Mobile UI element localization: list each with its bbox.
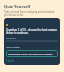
staticText: Question 3 of 10 - choose the best answe… (6, 28, 58, 34)
staticText: Quiz Yourself (4, 4, 31, 9)
button[interactable]: Something about the topic that matters (8, 52, 56, 55)
staticText: Check (6, 59, 14, 63)
staticText: Progress (6, 36, 16, 39)
staticText: Your answer (6, 45, 20, 48)
staticText: Something about the topic that matters (8, 52, 53, 55)
button[interactable]: Question 3 of 10 - choose the best answe… (4, 18, 60, 65)
staticText: Take a break from studying and test what… (4, 10, 59, 16)
